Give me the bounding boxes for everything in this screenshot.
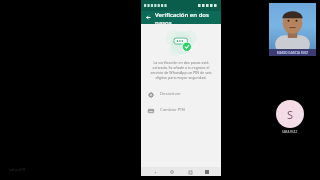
staticText: salva418	[9, 167, 26, 172]
staticText: S	[287, 107, 294, 122]
button[interactable]: Menú	[203, 168, 211, 176]
button[interactable]: MARIO GARCIA RUIZ (Anfitrión)	[269, 3, 316, 56]
button[interactable]: Cambiar PIN	[141, 104, 221, 116]
staticText: Cambiar PIN	[160, 107, 185, 113]
staticText: Desactivar	[160, 91, 181, 97]
staticText: SARA RUIZ	[282, 130, 298, 134]
button[interactable]: Inicio	[168, 168, 176, 176]
button[interactable]: Atrás	[144, 13, 153, 22]
staticText: Verificación en dos pasos	[155, 11, 221, 24]
staticText: MARIO GARCIA RUIZ (Anfitrión)	[269, 51, 316, 55]
button[interactable]: Desactivar	[141, 88, 221, 100]
button[interactable]: Recientes	[186, 168, 194, 176]
button[interactable]: Atrás	[151, 168, 159, 176]
staticText: La verificación en dos pasos está activa…	[150, 60, 212, 80]
button[interactable]: S	[276, 100, 304, 134]
